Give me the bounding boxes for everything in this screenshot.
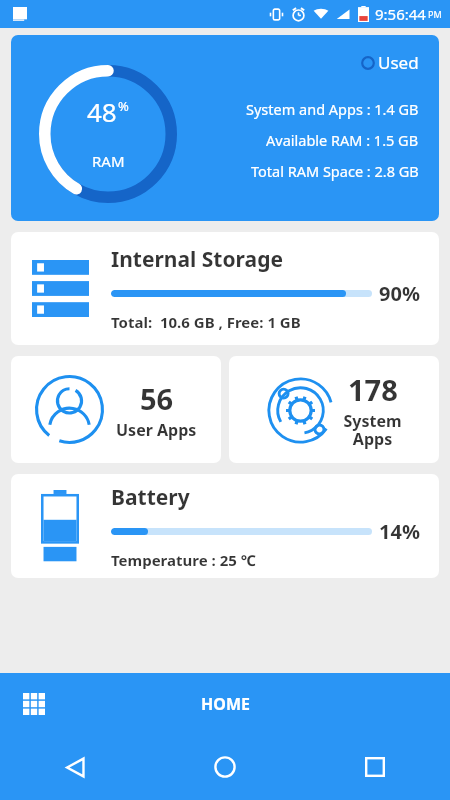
button[interactable]: User apps: [11, 356, 221, 463]
other: Battery: [41, 490, 79, 562]
staticText: 9:56:44: [375, 4, 426, 24]
button[interactable]: Used: [11, 35, 439, 221]
staticText: %: [118, 97, 129, 115]
staticText: Total: 10.6 GB , Free: 1 GB: [111, 312, 301, 332]
button[interactable]: Recent apps: [300, 734, 450, 800]
button[interactable]: Battery: [11, 474, 439, 578]
button[interactable]: Home: [150, 734, 300, 800]
other: System apps: [266, 376, 335, 445]
button[interactable]: Internal storage: [11, 232, 439, 345]
staticText: User Apps: [116, 419, 197, 441]
staticText: Battery: [111, 483, 190, 512]
button[interactable]: HOME: [183, 685, 268, 723]
staticText: 48: [87, 94, 117, 129]
staticText: RAM: [92, 151, 125, 171]
staticText: 178: [348, 370, 398, 409]
staticText: Temperature : 25 ℃: [111, 550, 256, 570]
staticText: System Apps: [343, 410, 402, 450]
staticText: PM: [428, 8, 442, 20]
staticText: Total RAM Space : 2.8 GB: [251, 161, 419, 181]
staticText: Internal Storage: [111, 245, 283, 274]
staticText: Used: [378, 51, 419, 74]
staticText: 56: [140, 379, 174, 418]
staticText: 90%: [379, 280, 420, 307]
staticText: HOME: [201, 693, 250, 715]
button[interactable]: Apps: [14, 684, 54, 724]
button[interactable]: Back: [0, 734, 150, 800]
other: User apps: [35, 375, 104, 444]
staticText: System and Apps : 1.4 GB: [246, 99, 419, 119]
other: Internal storage: [32, 260, 89, 317]
staticText: Available RAM : 1.5 GB: [266, 130, 419, 150]
staticText: 14%: [379, 518, 420, 545]
button[interactable]: System apps: [229, 356, 439, 463]
